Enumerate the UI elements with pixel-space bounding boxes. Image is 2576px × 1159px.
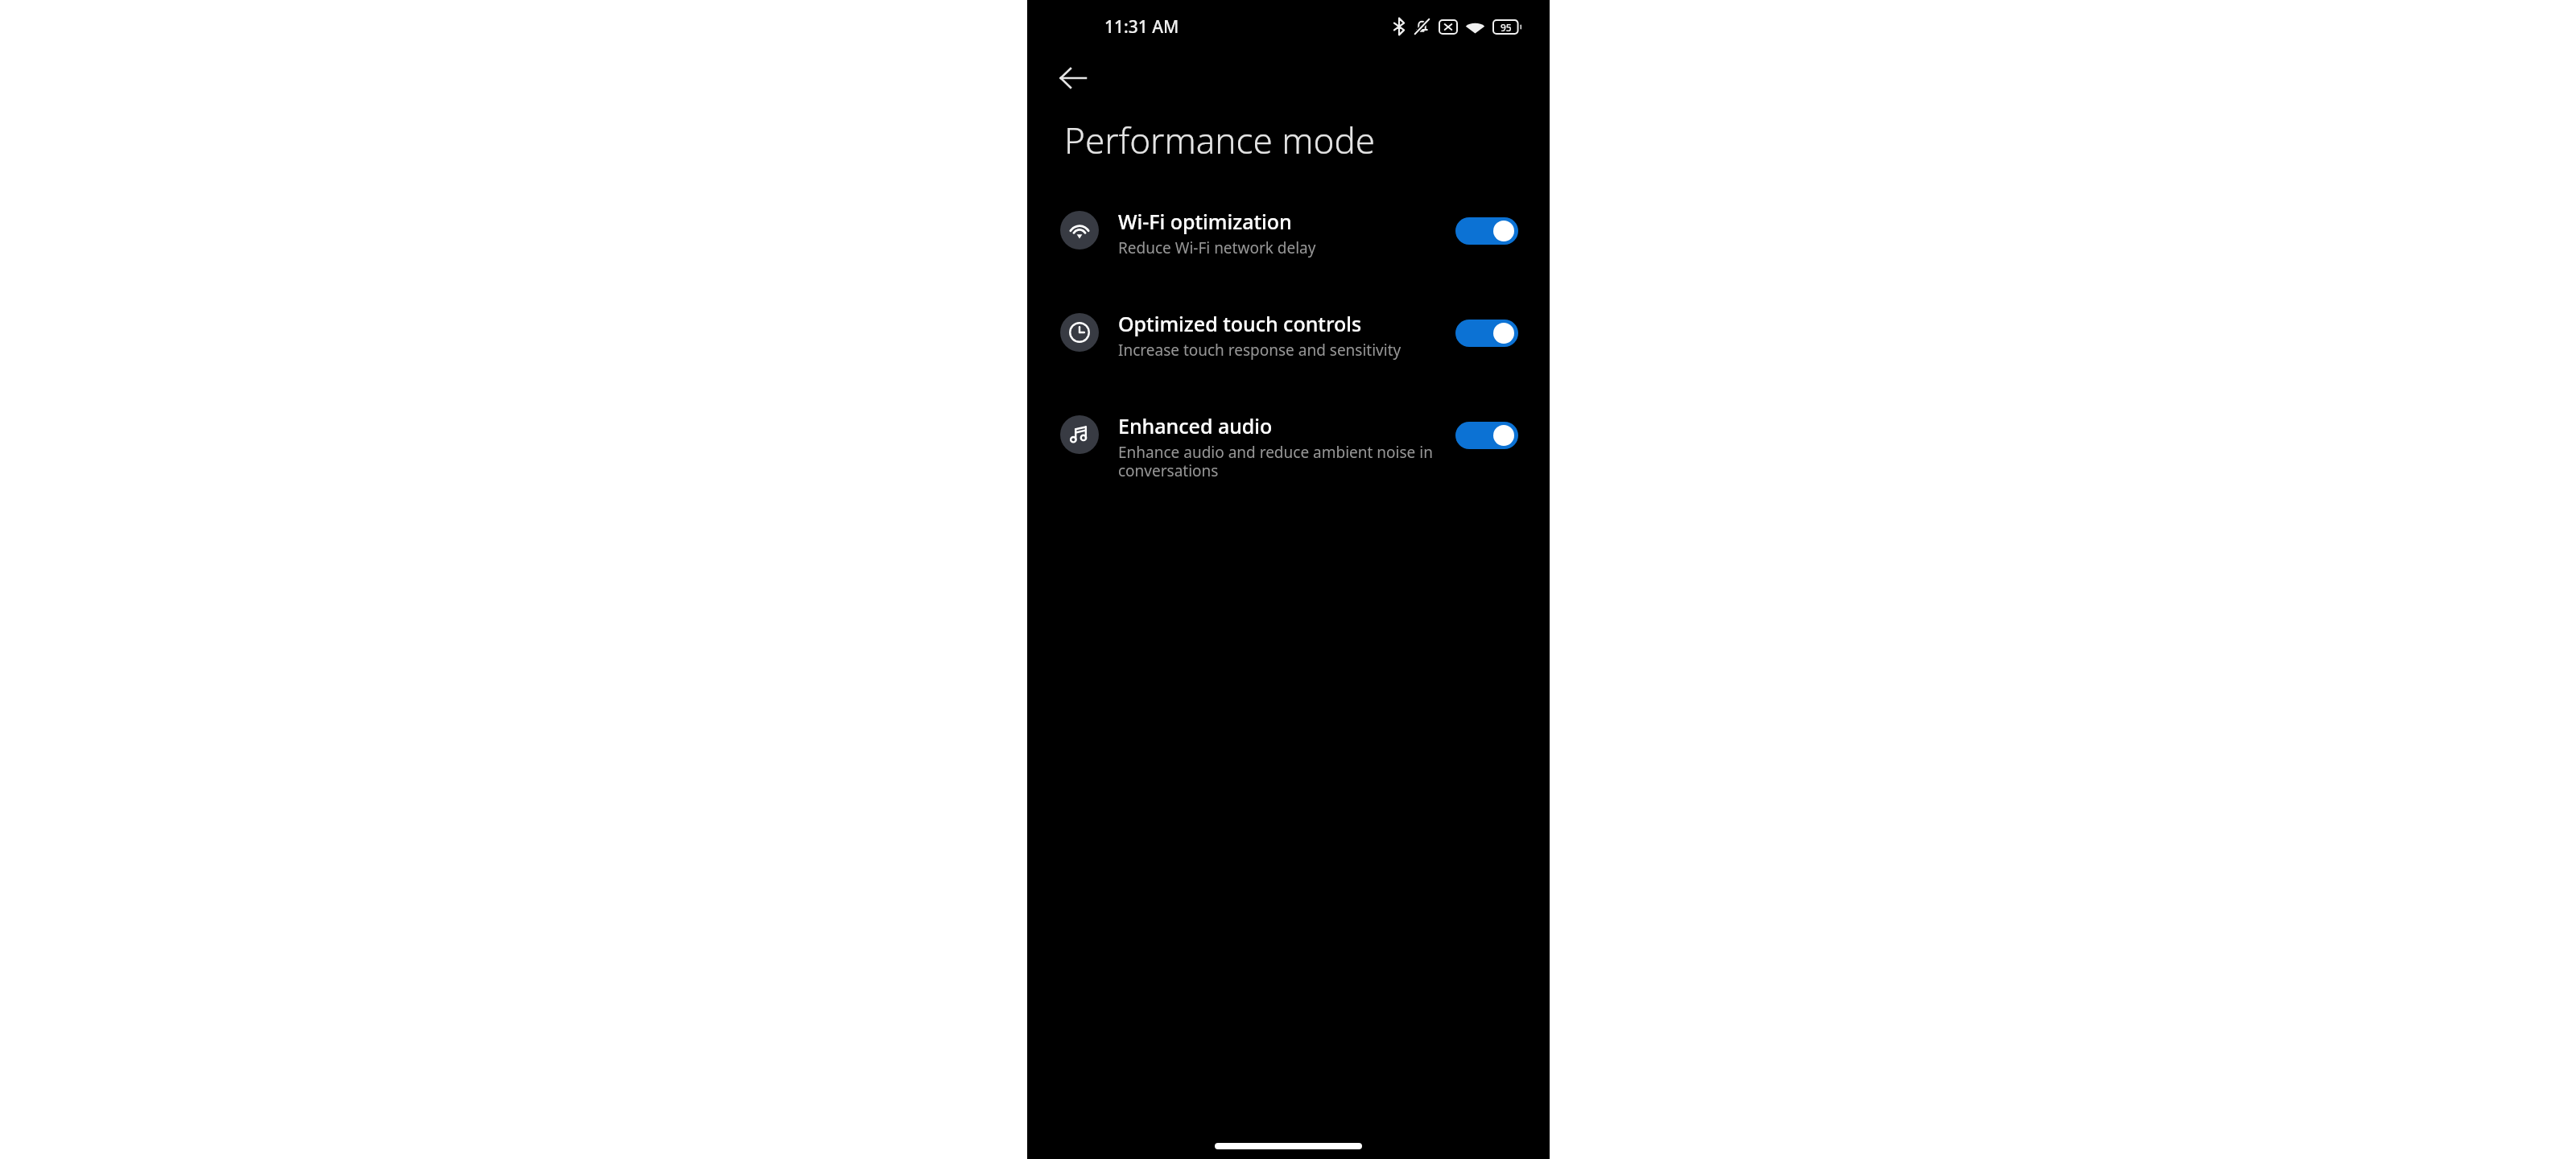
staticText: Optimized touch controls (1118, 310, 1362, 337)
button[interactable]: Toggle on (1455, 217, 1518, 245)
button[interactable]: Toggle on (1455, 320, 1518, 347)
button[interactable]: Toggle on (1455, 422, 1518, 449)
staticText: 11:31 AM (1104, 15, 1179, 39)
staticText: Increase touch response and sensitivity (1118, 340, 1402, 361)
staticText: Enhance audio and reduce ambient noise i… (1118, 442, 1447, 481)
staticText: Wi-Fi optimization (1118, 208, 1292, 235)
button[interactable]: Optimized touch controls (1027, 310, 1550, 361)
staticText: Reduce Wi-Fi network delay (1118, 237, 1316, 258)
staticText: Performance mode (1064, 116, 1376, 164)
button[interactable]: Enhanced audio (1027, 412, 1550, 481)
staticText: 95 (1501, 21, 1512, 34)
button[interactable]: Back (1048, 53, 1098, 103)
staticText: Enhanced audio (1118, 412, 1273, 439)
button[interactable]: Wi-Fi optimization (1027, 208, 1550, 258)
